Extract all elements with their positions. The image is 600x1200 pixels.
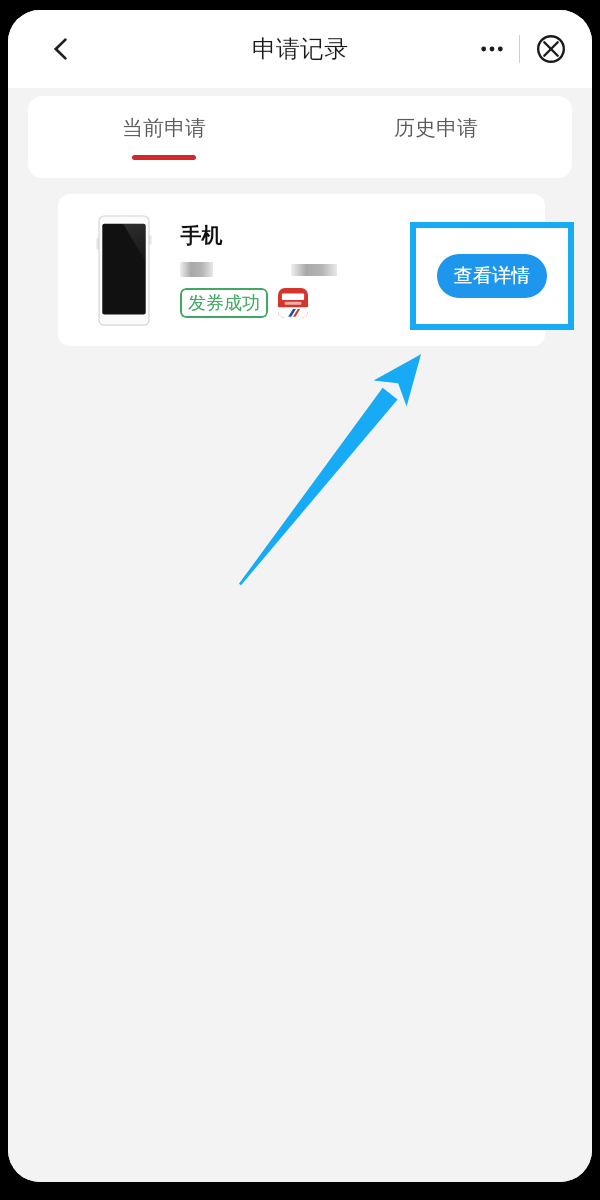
staticText: 当前申请 [122, 115, 206, 141]
staticText: 发券成功 [188, 292, 260, 315]
button[interactable]: 当前申请 [28, 96, 300, 178]
button[interactable]: 历史申请 [300, 96, 572, 178]
button[interactable]: Back [38, 26, 84, 72]
button[interactable]: Close [530, 28, 572, 70]
staticText: 查看详情 [454, 264, 530, 288]
button[interactable]: 手机 [58, 194, 545, 346]
button[interactable]: More options [471, 28, 513, 70]
staticText: 申请记录 [252, 34, 348, 64]
staticText: 手机 [180, 223, 222, 249]
staticText: 历史申请 [394, 115, 478, 141]
button[interactable]: 查看详情 [437, 254, 547, 298]
